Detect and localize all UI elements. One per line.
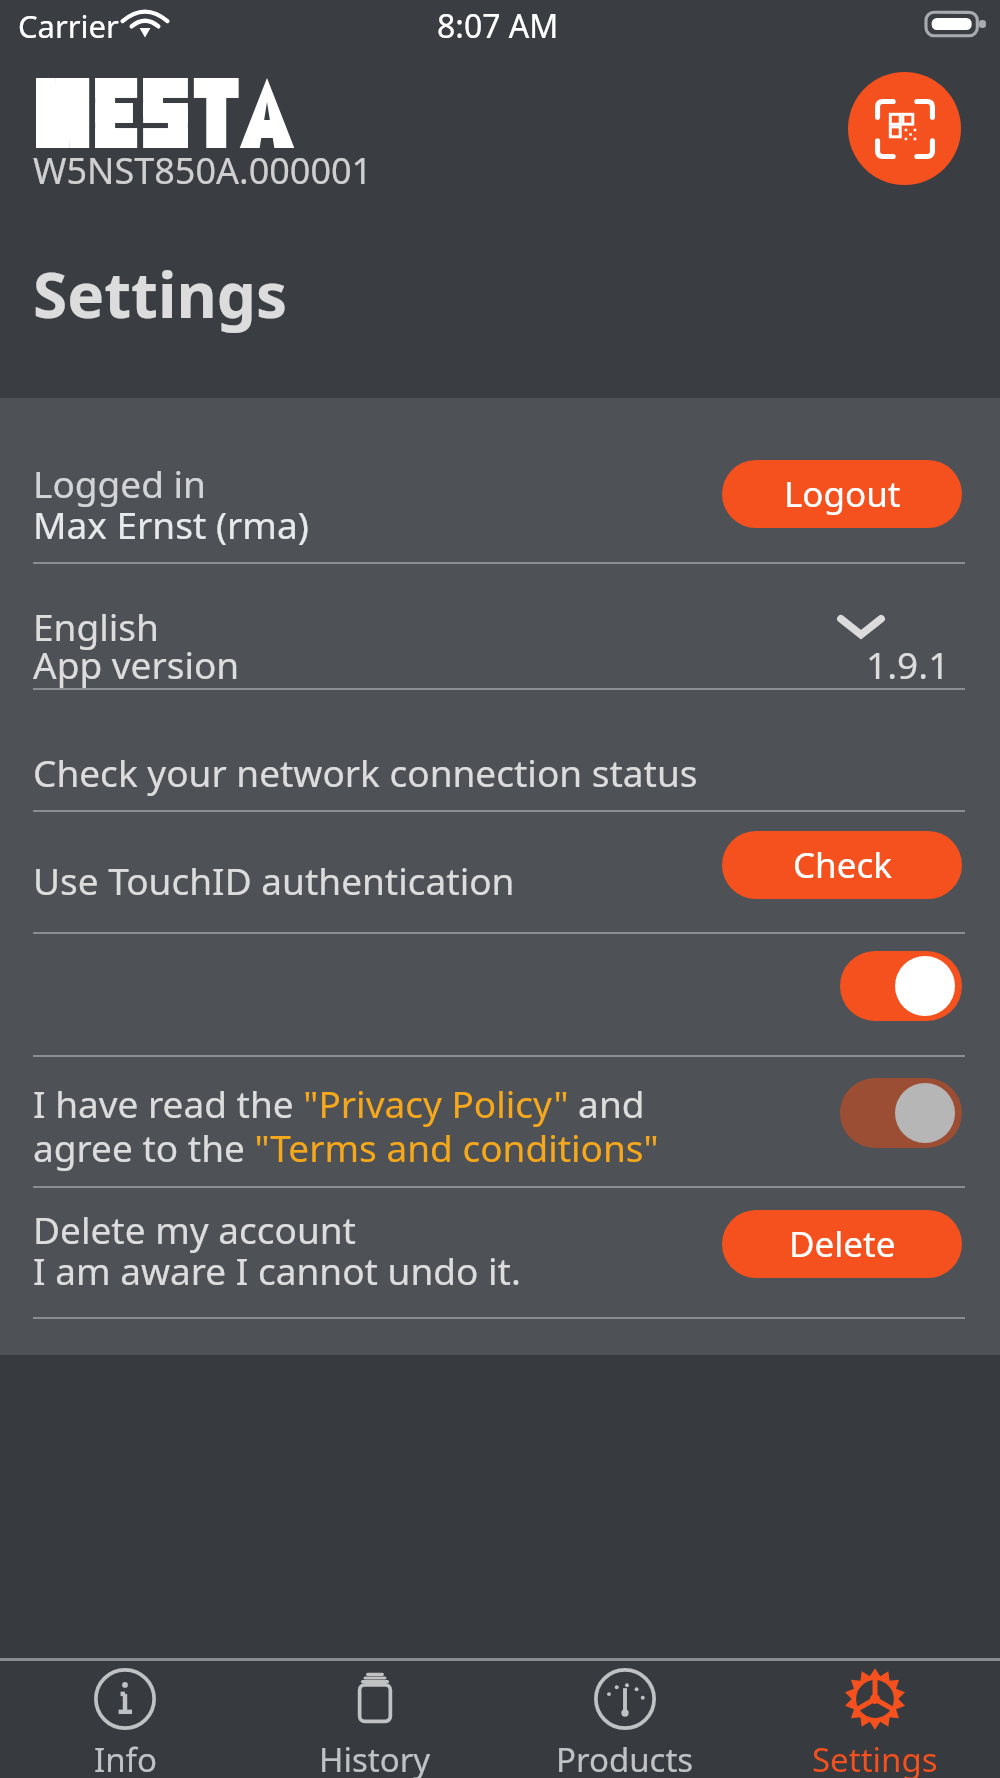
staticText: History [319, 1737, 431, 1778]
staticText: Check your network connection status [33, 747, 698, 797]
button[interactable]: Scan QR code [848, 72, 961, 185]
button[interactable]: Logout [722, 460, 962, 528]
staticText: 1.9.1 [866, 639, 950, 689]
button[interactable]: Delete my account [0, 1188, 650, 1316]
staticText: Info [94, 1737, 157, 1778]
staticText: Delete [789, 1220, 896, 1268]
button[interactable]: English [0, 564, 965, 688]
staticText: Carrier [18, 5, 119, 47]
staticText: W5NST850A.000001 [33, 146, 373, 195]
staticText: Settings [812, 1737, 938, 1778]
button[interactable]: Logged in [0, 398, 650, 562]
staticText: App version [33, 639, 240, 689]
button[interactable]: Info [0, 1661, 250, 1778]
button[interactable]: Accept terms and conditions [840, 1078, 962, 1148]
staticText: Delete my account [33, 1204, 356, 1254]
staticText: Settings [33, 252, 288, 336]
staticText: Check [793, 841, 892, 889]
staticText: I am aware I cannot undo it. [33, 1245, 521, 1295]
staticText: Products [556, 1737, 694, 1778]
button[interactable]: Products [500, 1661, 750, 1778]
button[interactable]: Settings [750, 1661, 1000, 1778]
staticText: Logged in [33, 458, 206, 508]
button[interactable]: I have read the "Privacy Policy" and agr… [0, 1057, 720, 1185]
staticText: Use TouchID authentication [33, 855, 515, 905]
button[interactable]: Check [722, 831, 962, 899]
staticText: Max Ernst (rma) [33, 499, 309, 549]
staticText: English [33, 601, 159, 651]
button[interactable]: Delete [722, 1210, 962, 1278]
button[interactable]: Use TouchID authentication [840, 951, 962, 1021]
button[interactable]: History [250, 1661, 500, 1778]
staticText: 8:07 AM [437, 4, 559, 48]
staticText: I have read the "Privacy Policy" and agr… [33, 1078, 659, 1173]
staticText: Logout [784, 470, 901, 518]
